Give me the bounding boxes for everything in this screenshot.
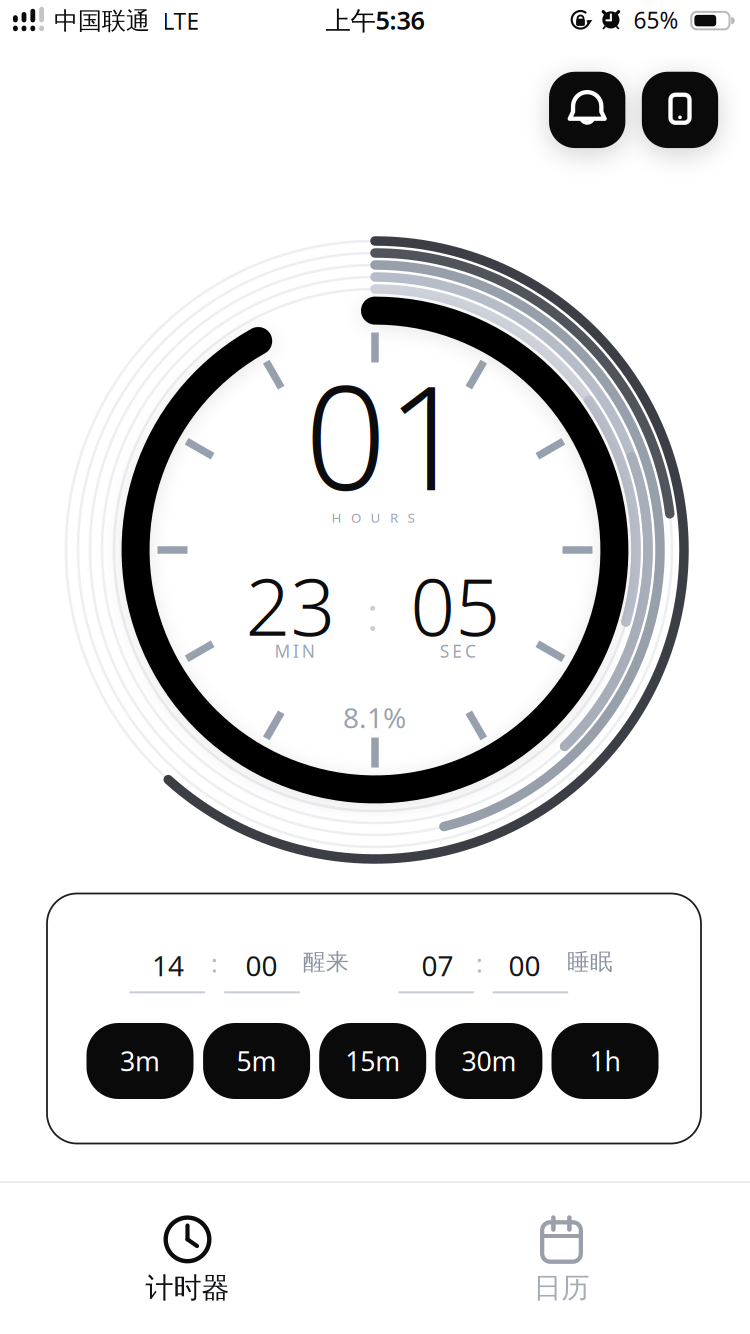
- button[interactable]: 00: [222, 934, 302, 998]
- staticText: 睡眠: [567, 948, 613, 976]
- staticText: :: [211, 946, 218, 980]
- button[interactable]: 07: [396, 934, 476, 998]
- staticText: 00: [245, 947, 277, 984]
- button[interactable]: 14: [127, 934, 207, 998]
- staticText: 07: [421, 947, 453, 984]
- button[interactable]: 5m: [203, 1023, 310, 1099]
- button[interactable]: 1h: [551, 1023, 658, 1099]
- staticText: 3m: [120, 1043, 160, 1079]
- staticText: 醒来: [303, 948, 349, 976]
- staticText: 01: [304, 339, 468, 530]
- staticText: SEC: [440, 639, 476, 662]
- staticText: 1h: [589, 1043, 620, 1079]
- staticText: 23: [246, 553, 336, 657]
- button[interactable]: 30m: [435, 1023, 542, 1099]
- button[interactable]: 3m: [86, 1023, 193, 1099]
- button[interactable]: 屏幕常亮: [642, 72, 718, 148]
- staticText: 中国联通: [54, 6, 150, 36]
- staticText: 14: [152, 947, 184, 984]
- button[interactable]: 通知: [549, 72, 625, 148]
- staticText: 00: [508, 947, 540, 984]
- button[interactable]: 计时器: [97, 1202, 277, 1322]
- button[interactable]: 日历: [472, 1202, 652, 1322]
- staticText: 8.1%: [343, 699, 406, 736]
- staticText: 15m: [345, 1043, 400, 1079]
- staticText: HOURS: [331, 509, 414, 526]
- staticText: 65%: [633, 5, 678, 35]
- staticText: 计时器: [145, 1271, 229, 1305]
- staticText: :: [476, 946, 483, 980]
- staticText: 30m: [461, 1043, 516, 1079]
- staticText: MIN: [274, 639, 315, 662]
- staticText: 05: [410, 553, 500, 657]
- staticText: 上午5:36: [325, 3, 424, 37]
- button[interactable]: 00: [490, 934, 570, 998]
- staticText: 5m: [237, 1043, 277, 1079]
- button[interactable]: 15m: [319, 1023, 426, 1099]
- staticText: 日历: [533, 1271, 589, 1305]
- staticText: LTE: [162, 6, 199, 36]
